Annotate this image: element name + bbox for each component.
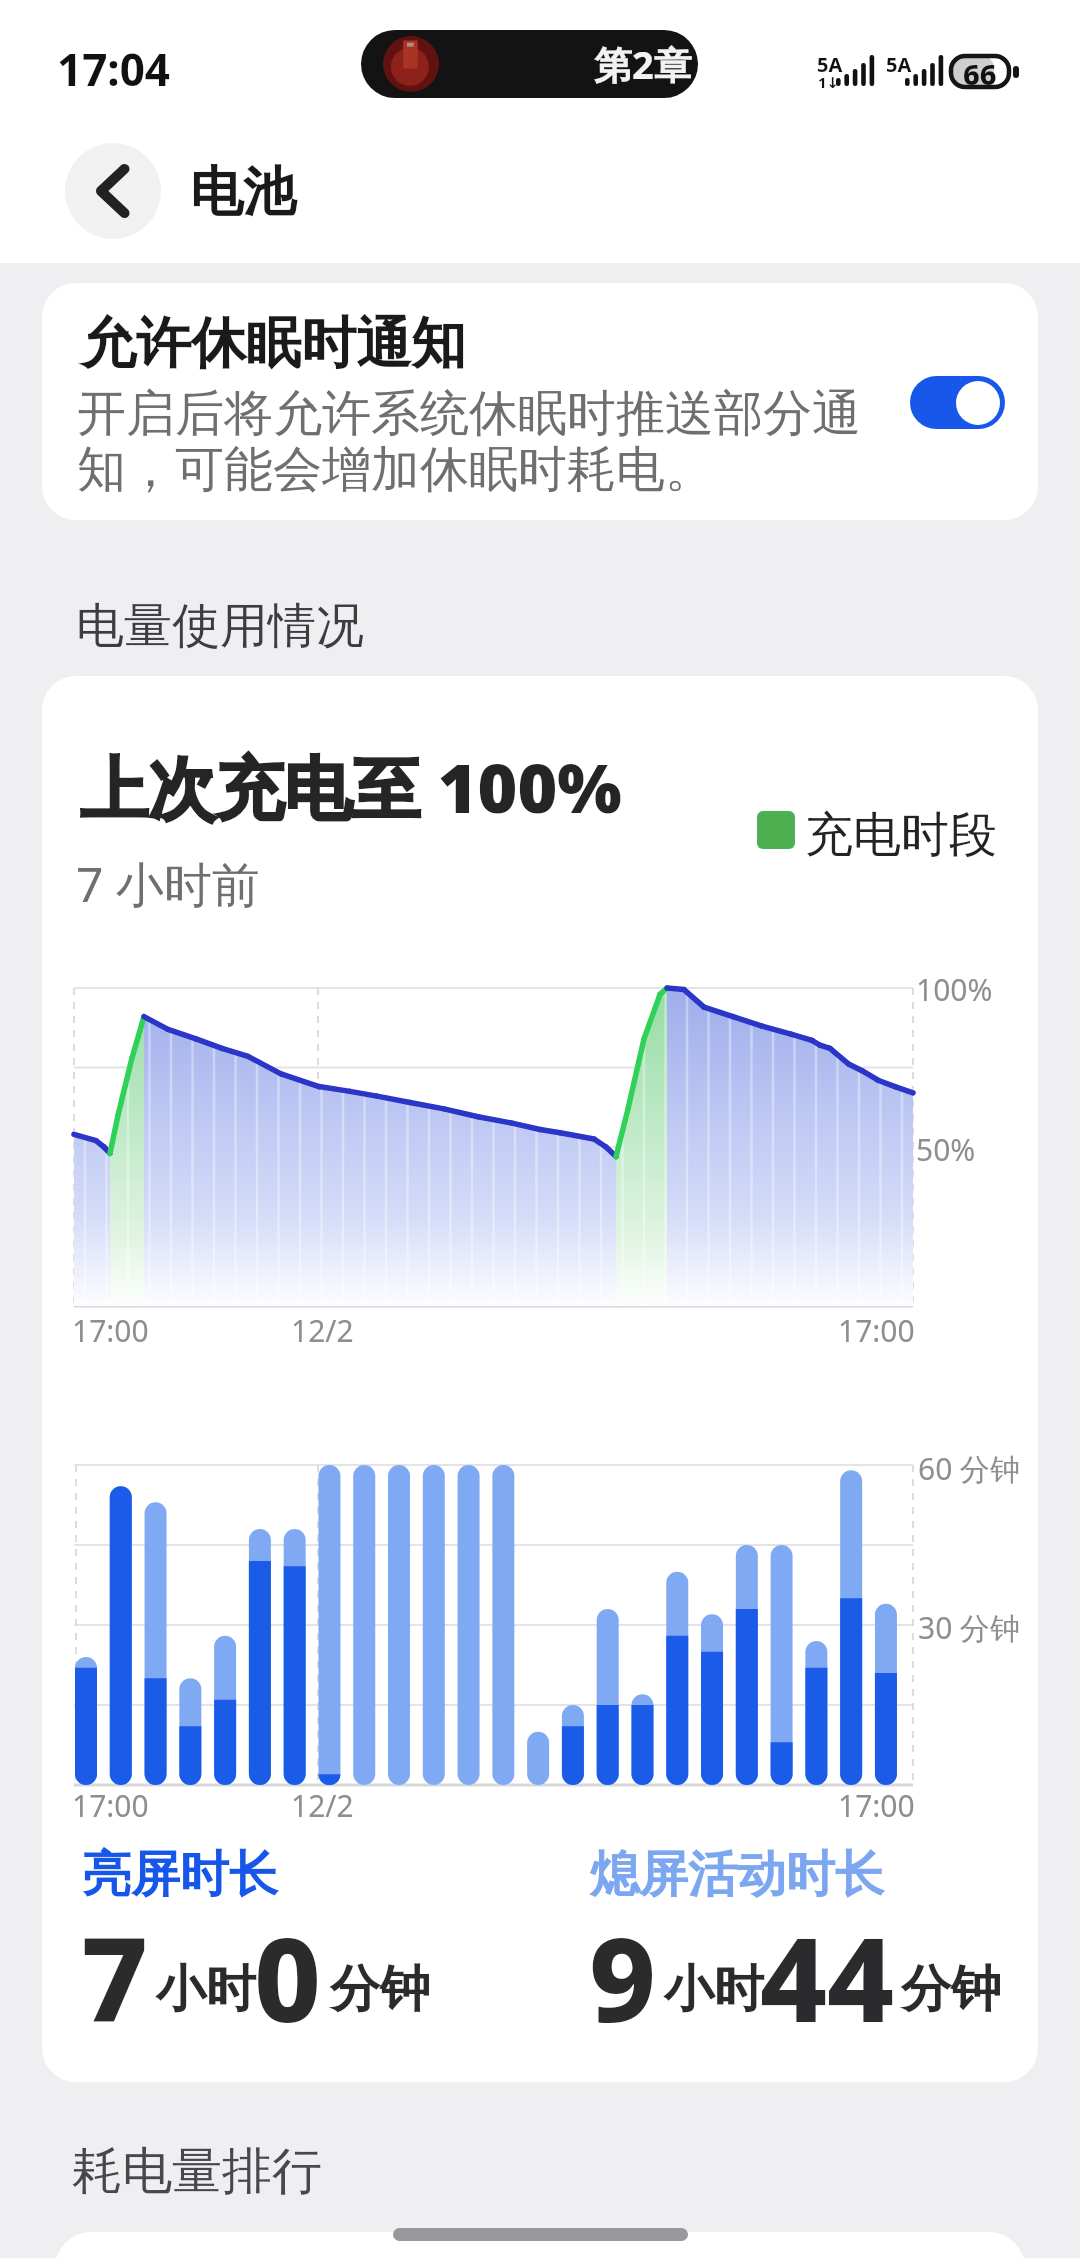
- staticText: 44: [760, 1898, 895, 2056]
- staticText: 耗电量排行: [72, 2140, 322, 2203]
- staticText: 第2章: [594, 38, 692, 90]
- staticText: 17:00: [838, 1785, 915, 1826]
- staticText: 熄屏活动时长: [590, 1844, 884, 1906]
- staticText: 亮屏时长: [82, 1844, 278, 1906]
- staticText: 9: [589, 1898, 657, 2056]
- staticText: 30 分钟: [918, 1607, 1021, 1648]
- staticText: 小时: [156, 1958, 256, 2021]
- staticText: 电量使用情况: [76, 596, 364, 656]
- staticText: 1↓: [818, 72, 840, 92]
- staticText: 开启后将允许系统休眠时推送部分通: [77, 383, 861, 445]
- staticText: 充电时段: [805, 805, 997, 865]
- staticText: 17:00: [72, 1785, 149, 1826]
- staticText: 17:04: [57, 39, 171, 99]
- staticText: 7 小时前: [76, 851, 260, 917]
- staticText: 小时: [664, 1958, 764, 2021]
- staticText: 17:00: [72, 1310, 149, 1351]
- button[interactable]: [55, 2232, 1025, 2258]
- staticText: 5A: [886, 51, 912, 78]
- button[interactable]: 第2章: [361, 30, 698, 98]
- button[interactable]: [910, 376, 1005, 429]
- staticText: 0: [254, 1898, 322, 2056]
- staticText: 分钟: [330, 1958, 430, 2021]
- staticText: 66: [963, 54, 997, 89]
- button[interactable]: [65, 143, 161, 239]
- staticText: 7: [81, 1898, 149, 2056]
- staticText: 100%: [916, 969, 993, 1010]
- button[interactable]: 允许休眠时通知: [42, 283, 1038, 520]
- staticText: 知，可能会增加休眠时耗电。: [77, 439, 714, 501]
- staticText: 12/2: [291, 1785, 354, 1826]
- staticText: 分钟: [901, 1958, 1001, 2021]
- staticText: 5A: [817, 51, 843, 78]
- staticText: 60 分钟: [918, 1448, 1021, 1489]
- staticText: 上次充电至 100%: [80, 740, 622, 833]
- staticText: 电池: [190, 159, 296, 226]
- staticText: 50%: [916, 1129, 976, 1170]
- staticText: 12/2: [291, 1310, 354, 1351]
- staticText: 允许休眠时通知: [81, 309, 466, 378]
- staticText: 17:00: [838, 1310, 915, 1351]
